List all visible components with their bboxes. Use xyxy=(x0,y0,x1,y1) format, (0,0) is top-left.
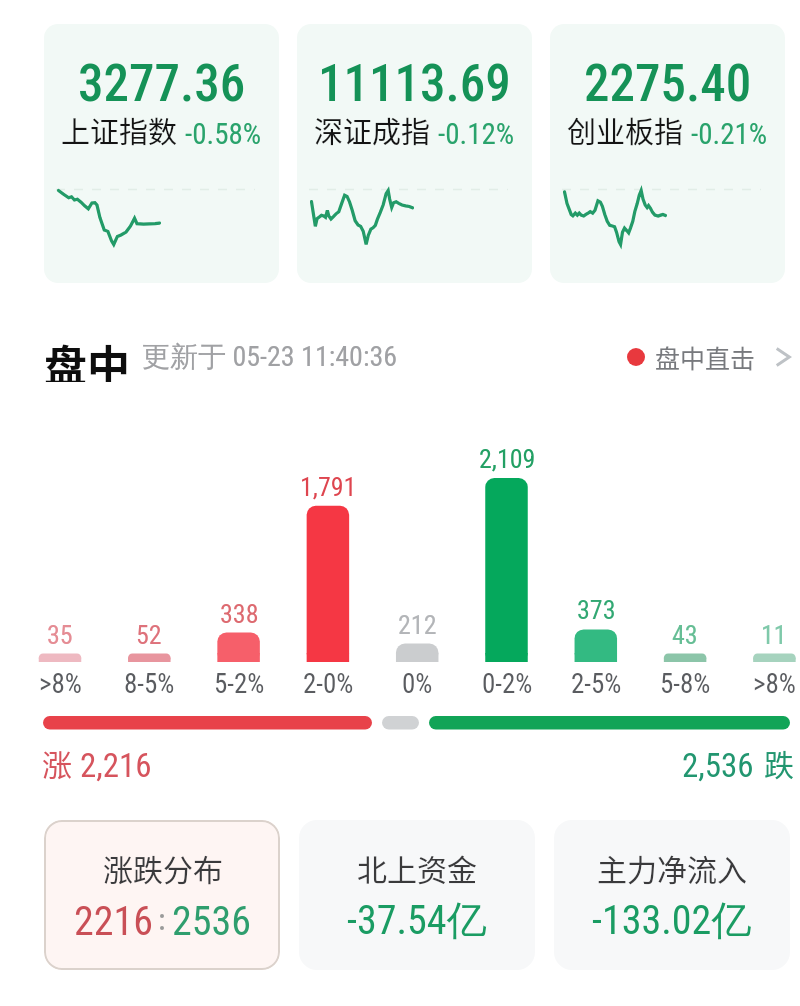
staticText: 0-2% xyxy=(482,668,533,700)
staticText: 更新于 05-23 11:40:36 xyxy=(142,339,398,374)
staticText: 43 xyxy=(672,620,698,650)
staticText: 2,109 xyxy=(479,444,536,474)
staticText: 2,216 xyxy=(80,746,152,785)
staticText: 2275.40 xyxy=(584,54,752,114)
staticText: 1,791 xyxy=(300,472,357,502)
staticText: 5-8% xyxy=(660,668,711,700)
staticText: 创业板指 xyxy=(567,109,684,151)
staticText: >8% xyxy=(39,668,82,700)
staticText: 0% xyxy=(402,668,433,700)
staticText: 2-0% xyxy=(303,668,354,700)
staticText: 11113.69 xyxy=(318,54,511,114)
staticText: 212 xyxy=(398,610,437,640)
button[interactable]: 3277.36 xyxy=(44,24,279,283)
button[interactable]: 涨跌分布 xyxy=(44,820,280,970)
staticText: 35 xyxy=(47,620,73,650)
staticText: 338 xyxy=(220,599,259,629)
button[interactable]: 2275.40 xyxy=(550,24,785,283)
staticText: 涨 xyxy=(42,741,72,784)
staticText: 上证指数 xyxy=(61,109,178,151)
staticText: 2,536 xyxy=(682,746,754,785)
staticText: 5-2% xyxy=(214,668,265,700)
staticText: 3277.36 xyxy=(78,54,246,114)
staticText: >8% xyxy=(753,668,796,700)
staticText: 盘中 xyxy=(44,332,130,382)
staticText: -0.21% xyxy=(691,117,768,151)
staticText: 主力净流入 xyxy=(597,846,747,889)
staticText: 11 xyxy=(761,620,787,650)
staticText: 8-5% xyxy=(124,668,175,700)
button[interactable]: 盘中直击 xyxy=(623,333,796,381)
staticText: -0.58% xyxy=(185,117,262,151)
button[interactable]: 主力净流入 xyxy=(554,820,790,970)
button[interactable]: 11113.69 xyxy=(297,24,532,283)
staticText: 2216 xyxy=(74,898,153,945)
button[interactable]: 北上资金 xyxy=(299,820,535,970)
staticText: 2536 xyxy=(172,898,251,945)
staticText: 盘中直击 xyxy=(655,339,756,375)
staticText: 北上资金 xyxy=(357,846,477,889)
staticText: -133.02亿 xyxy=(592,895,752,945)
staticText: -0.12% xyxy=(438,117,515,151)
staticText: 深证成指 xyxy=(314,109,431,151)
staticText: 2-5% xyxy=(571,668,622,700)
staticText: 52 xyxy=(136,620,162,650)
staticText: -37.54亿 xyxy=(347,895,487,945)
staticText: 373 xyxy=(577,595,616,625)
staticText: 涨跌分布 xyxy=(103,846,223,889)
staticText: 跌 xyxy=(764,741,794,784)
